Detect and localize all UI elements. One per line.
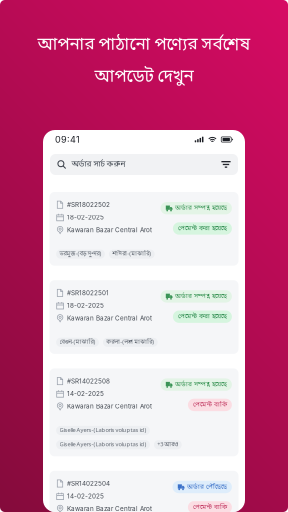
staticText: #SR14022504 — [67, 480, 110, 487]
staticText: শসিরা-(মাঝারি) — [112, 250, 151, 258]
staticText: Kawaran Bazar Central Arot — [67, 226, 152, 234]
staticText: Kawaran Bazar Central Arot — [67, 505, 152, 512]
staticText: অর্ডার সম্পন্ন হয়েছে — [175, 204, 227, 213]
staticText: পেমেন্ট বাকি — [193, 503, 227, 512]
staticText: 14-02-2025 — [67, 390, 104, 397]
staticText: #SR18022502 — [67, 201, 110, 208]
staticText: পেমেন্ট করা হয়েছে — [178, 312, 227, 321]
staticText: অর্ডার পৌঁছেছে — [187, 483, 227, 491]
staticText: 09:41 — [55, 134, 80, 145]
staticText: অর্ডার সার্চ করুন — [71, 159, 125, 170]
staticText: Kawaran Bazar Central Arot — [67, 402, 152, 410]
staticText: Kawaran Bazar Central Arot — [67, 314, 152, 322]
staticText: পেমেন্ট করা হয়েছে — [178, 224, 227, 233]
staticText: অর্ডার সম্পন্ন হয়েছে — [175, 380, 227, 389]
staticText: অর্ডার সম্পন্ন হয়েছে — [175, 292, 227, 301]
staticText: 18-02-2025 — [67, 213, 104, 221]
button[interactable]: #SR14022504 — [49, 471, 238, 512]
staticText: #SR18022501 — [67, 289, 109, 297]
staticText: বেগুন-(মাঝারি) — [59, 338, 95, 346]
button[interactable]: #SR14022508 — [49, 368, 238, 456]
staticText: আপডেট দেখুন — [94, 66, 193, 89]
button[interactable]: #SR18022501 — [49, 280, 238, 354]
staticText: 18-02-2025 — [67, 302, 104, 309]
button[interactable]: #SR18022502 — [49, 192, 238, 266]
staticText: পেমেন্ট বাকি — [193, 401, 227, 409]
staticText: আপনার পাঠানো পণ্যের সর্বশেষ — [37, 34, 250, 57]
staticText: 14-02-2025 — [67, 492, 104, 500]
staticText: তরমুজ-(বড় সুন্দর) — [59, 250, 101, 258]
staticText: করলা-(লম্বা মাঝারি) — [106, 338, 154, 346]
staticText: Giselle Ayers-(Laboris voluptas id) — [59, 427, 146, 434]
staticText: Giselle Ayers-(Laboris voluptas id) — [59, 441, 146, 448]
button[interactable]: অর্ডার সার্চ করুন — [50, 154, 238, 175]
staticText: +3 আরও — [157, 441, 178, 448]
staticText: #SR14022508 — [67, 377, 110, 385]
